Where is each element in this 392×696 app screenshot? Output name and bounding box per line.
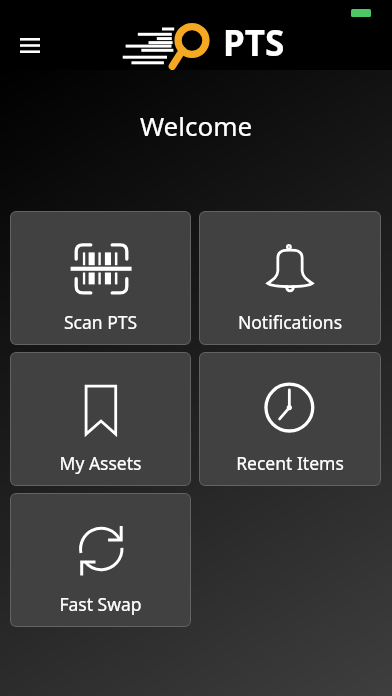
staticText: Scan PTS — [10, 310, 191, 334]
button[interactable]: Recent Items — [199, 352, 381, 486]
staticText: Welcome — [0, 108, 392, 143]
button[interactable]: Notifications — [199, 211, 381, 345]
staticText: Notifications — [199, 310, 381, 334]
staticText: PTS — [223, 19, 285, 67]
button[interactable]: My Assets — [10, 352, 191, 486]
staticText: Recent Items — [199, 451, 381, 475]
button[interactable]: Menu — [12, 28, 48, 64]
button[interactable]: Fast Swap — [10, 493, 191, 627]
button[interactable]: Scan PTS — [10, 211, 191, 345]
staticText: Fast Swap — [10, 592, 191, 616]
staticText: My Assets — [10, 451, 191, 475]
